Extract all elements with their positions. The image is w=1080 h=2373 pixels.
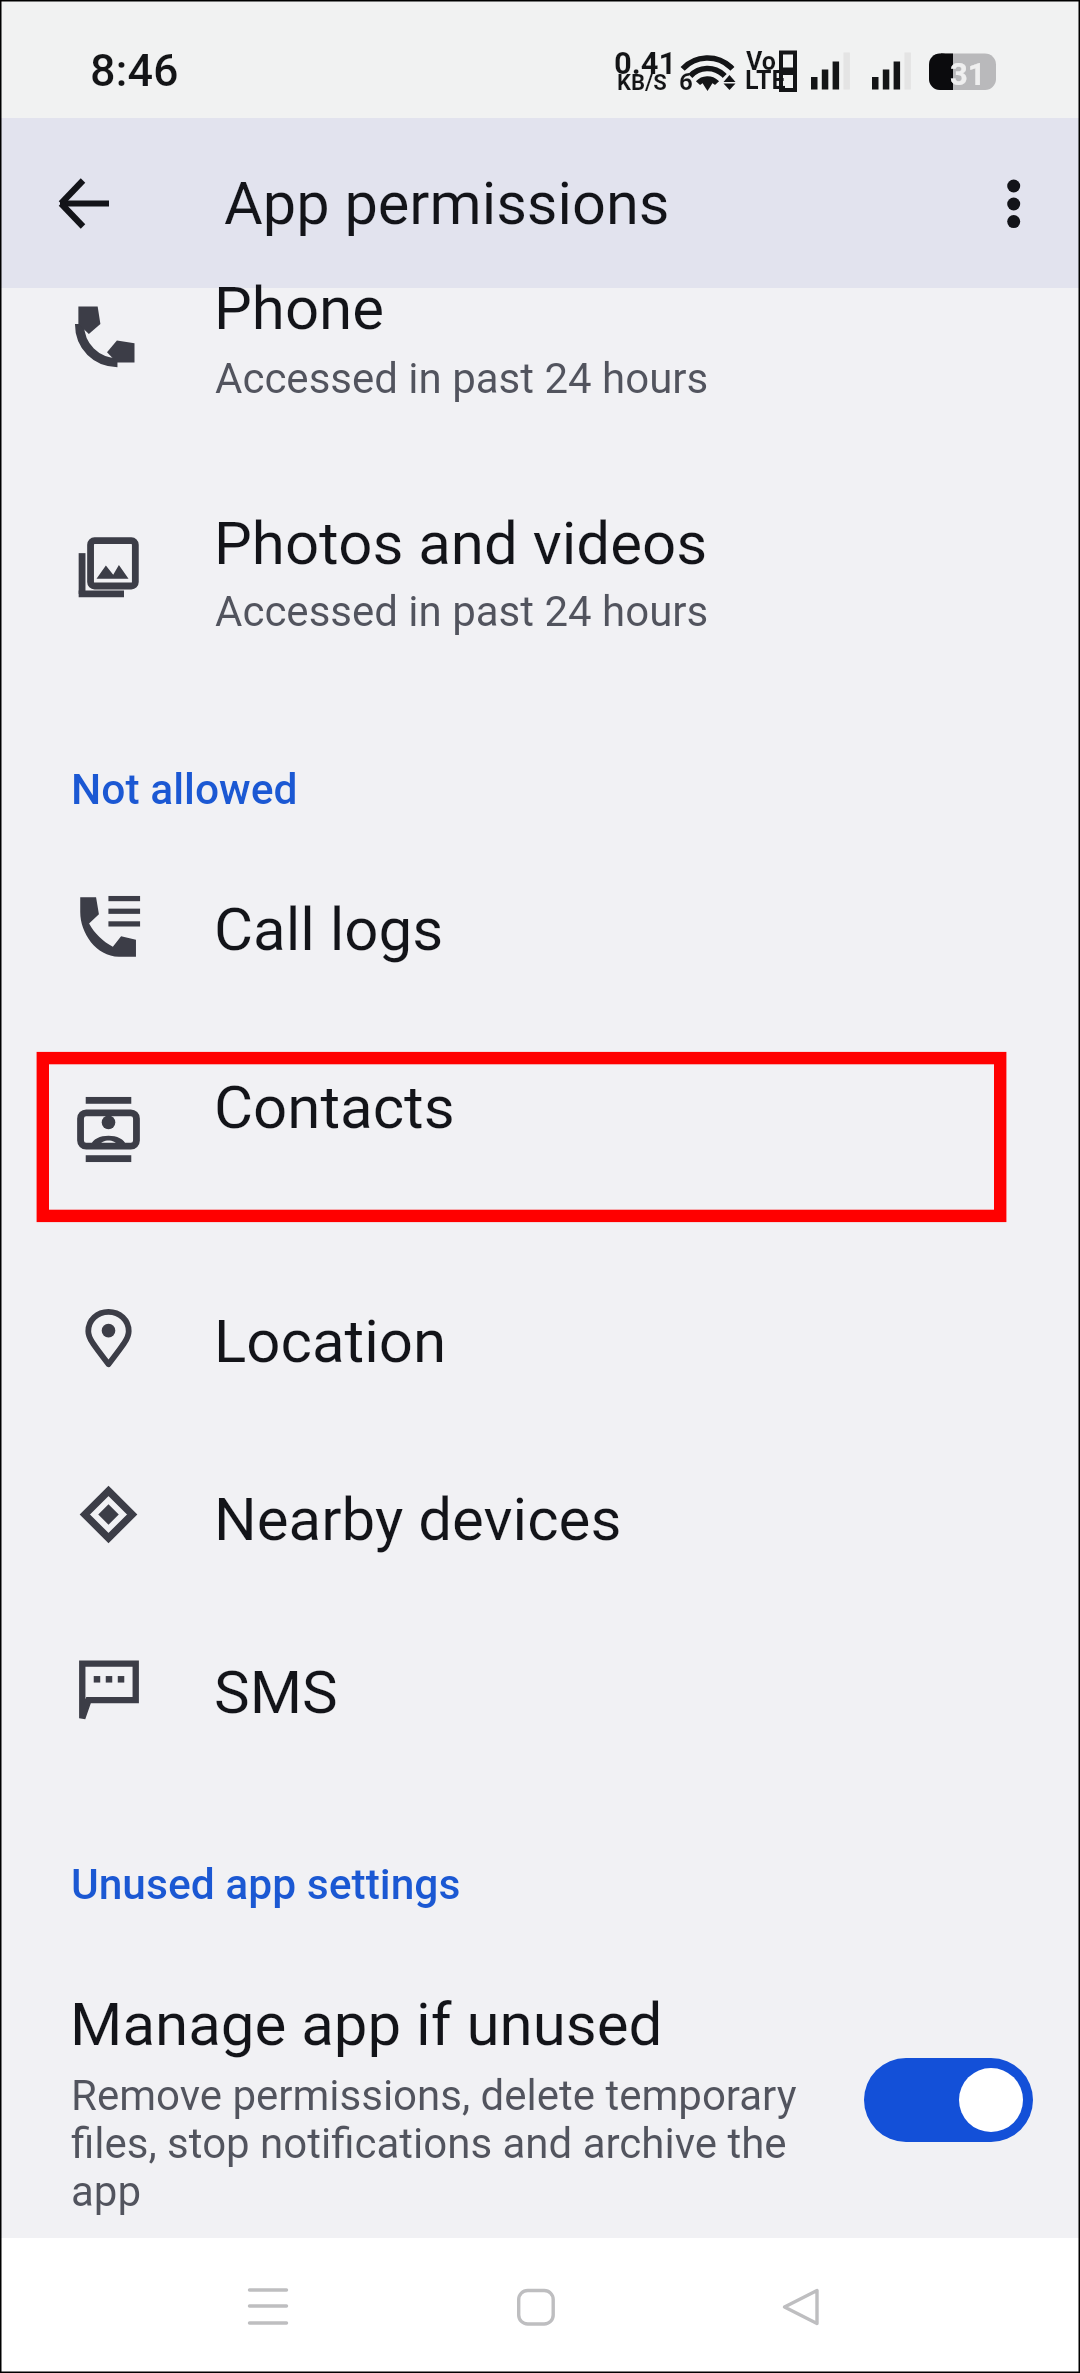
button[interactable]: Home xyxy=(485,2266,585,2346)
staticText: SMS xyxy=(214,1657,338,1727)
staticText: LTE xyxy=(745,66,786,95)
staticText: KB/S xyxy=(617,70,667,96)
button[interactable]: Manage app if unused toggle xyxy=(864,2058,1033,2142)
staticText: Not allowed xyxy=(71,765,298,815)
button[interactable]: Manage app if unused xyxy=(0,1975,1080,2225)
staticText: 6 xyxy=(679,68,693,96)
button[interactable]: SMS xyxy=(0,1606,1080,1778)
staticText: Location xyxy=(214,1306,447,1376)
staticText: App permissions xyxy=(224,169,670,239)
staticText: Remove permissions, delete temporary fil… xyxy=(71,2071,816,2216)
staticText: Accessed in past 24 hours xyxy=(215,587,709,636)
staticText: Photos and videos xyxy=(214,508,708,578)
staticText: Unused app settings xyxy=(71,1860,461,1910)
staticText: 0.41 xyxy=(614,45,677,81)
staticText: Manage app if unused xyxy=(70,1989,663,2059)
button[interactable]: Call logs xyxy=(0,872,1080,1044)
button[interactable]: More options xyxy=(958,146,1072,260)
button[interactable]: Photos and videos xyxy=(0,478,1080,682)
button[interactable]: Location xyxy=(0,1256,1080,1428)
button[interactable]: Recents xyxy=(218,2266,318,2346)
staticText: 31 xyxy=(950,56,986,92)
staticText: 8:46 xyxy=(90,44,179,97)
staticText: Phone xyxy=(214,273,385,343)
staticText: Accessed in past 24 hours xyxy=(215,354,709,403)
staticText: Nearby devices xyxy=(214,1484,622,1554)
button[interactable]: Back xyxy=(751,2266,851,2346)
button[interactable]: Contacts xyxy=(0,1052,1080,1222)
button[interactable]: Nearby devices xyxy=(0,1432,1080,1604)
button[interactable]: Phone xyxy=(0,288,1080,434)
staticText: Call logs xyxy=(214,894,444,964)
staticText: Contacts xyxy=(214,1072,455,1142)
staticText: Vo xyxy=(746,47,776,76)
button[interactable]: Back xyxy=(28,146,142,260)
